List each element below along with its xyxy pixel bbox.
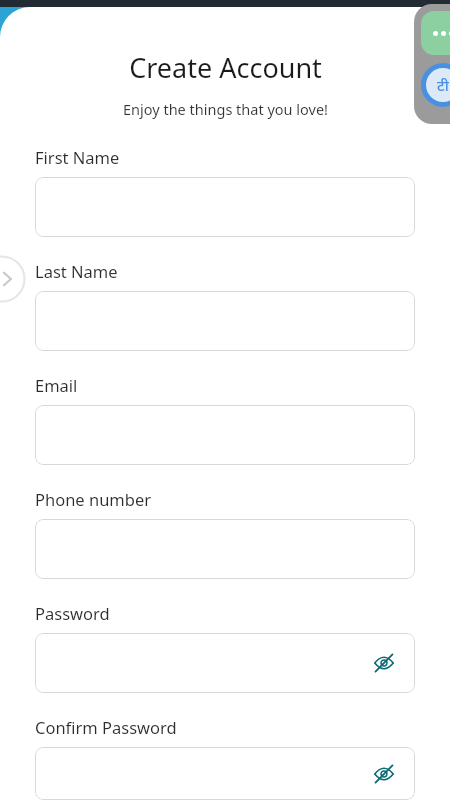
staticText: First Name <box>35 146 120 168</box>
button[interactable] <box>35 291 415 351</box>
staticText: Last Name <box>35 260 118 282</box>
staticText: Create Account <box>129 49 322 86</box>
button[interactable]: Navigate forward <box>0 255 26 303</box>
button[interactable]: टी <box>421 63 450 107</box>
button[interactable] <box>35 519 415 579</box>
staticText: Email <box>35 374 78 396</box>
button[interactable] <box>35 177 415 237</box>
button[interactable]: Show Confirm Password <box>369 759 399 789</box>
staticText: Password <box>35 602 110 624</box>
staticText: टी <box>437 75 449 95</box>
button[interactable] <box>421 11 450 55</box>
staticText: Enjoy the things that you love! <box>123 99 328 119</box>
button[interactable] <box>35 405 415 465</box>
button[interactable]: Show Password <box>369 648 399 678</box>
button[interactable]: Show Confirm Password <box>35 747 415 800</box>
staticText: Phone number <box>35 488 152 510</box>
staticText: Confirm Password <box>35 716 177 738</box>
button[interactable]: App shortcuts panel <box>421 11 450 117</box>
button[interactable]: Show Password <box>35 633 415 693</box>
